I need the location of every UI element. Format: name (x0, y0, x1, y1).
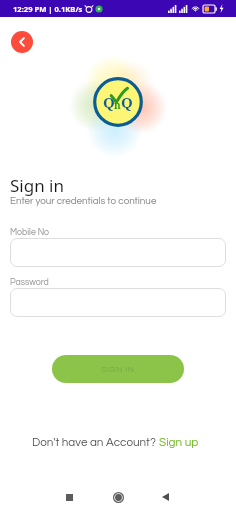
button[interactable]: Back (11, 31, 33, 53)
staticText: Q (121, 92, 133, 112)
staticText: 12:29 PM | 0.1KB/s (13, 4, 83, 14)
staticText: Sign up (159, 436, 199, 448)
button[interactable]: Sign up (159, 436, 199, 448)
staticText: Sign in (10, 174, 64, 197)
staticText: Enter your credentials to continue (10, 196, 157, 206)
button[interactable]: Recent apps (56, 484, 82, 510)
staticText: Mobile No (10, 228, 50, 237)
staticText: Password (10, 278, 49, 287)
button[interactable]: Password (10, 288, 226, 317)
button[interactable]: Home (105, 484, 131, 510)
button[interactable]: SIGN IN (52, 355, 184, 383)
staticText: SIGN IN (101, 365, 135, 374)
staticText: Don't have an Account? (32, 436, 159, 448)
button[interactable]: Back (152, 484, 178, 510)
staticText: Q (103, 92, 115, 112)
button[interactable]: Mobile No (10, 238, 226, 267)
staticText: n (114, 98, 121, 112)
